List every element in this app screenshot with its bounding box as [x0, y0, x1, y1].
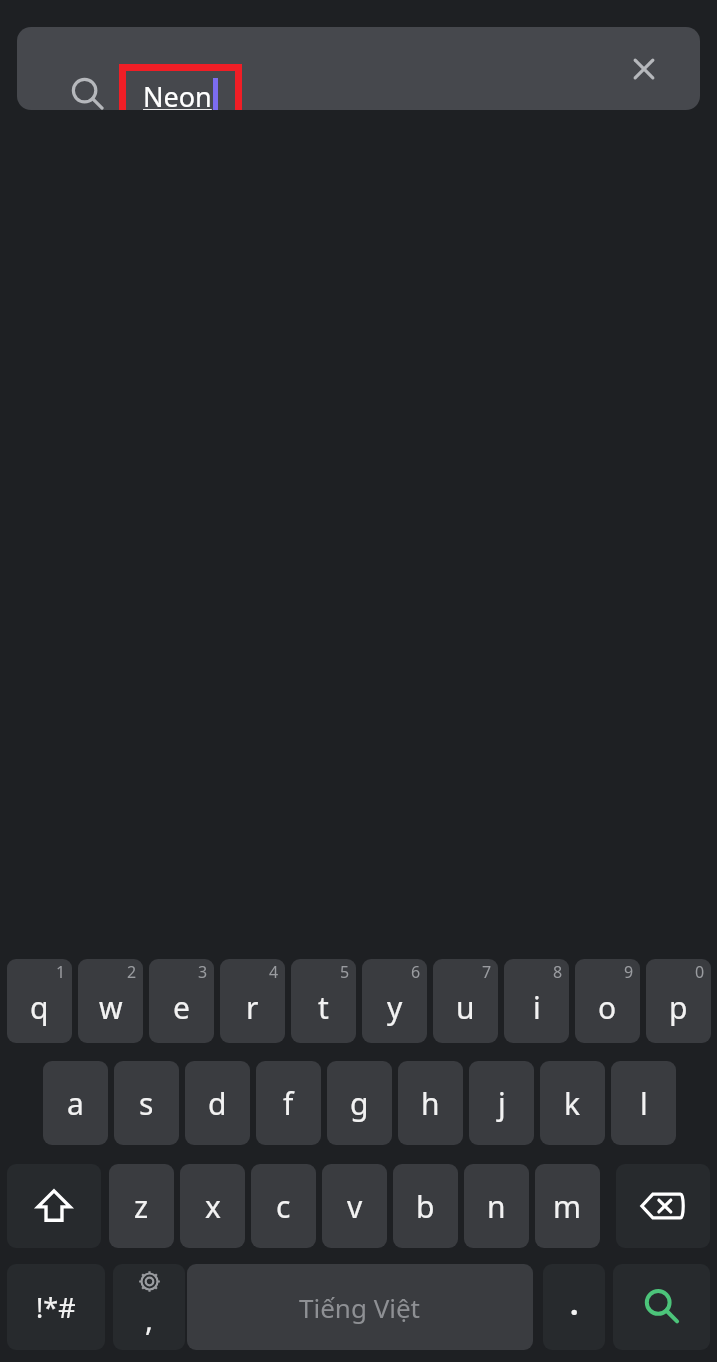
staticText: 1: [56, 961, 66, 983]
staticText: d: [208, 1083, 227, 1124]
staticText: 8: [553, 961, 563, 983]
staticText: 6: [411, 961, 421, 983]
staticText: e: [173, 987, 190, 1028]
button[interactable]: a: [43, 1061, 108, 1145]
button[interactable]: 0: [646, 959, 711, 1043]
staticText: p: [669, 987, 688, 1028]
button[interactable]: Comma, settings: [113, 1264, 185, 1350]
button[interactable]: Shift: [7, 1164, 101, 1248]
button[interactable]: Neon: [17, 27, 700, 110]
button[interactable]: j: [469, 1061, 534, 1145]
staticText: r: [246, 987, 259, 1028]
staticText: y: [387, 987, 403, 1028]
button[interactable]: 8: [504, 959, 569, 1043]
staticText: b: [416, 1186, 435, 1227]
button[interactable]: 2: [78, 959, 143, 1043]
staticText: o: [598, 987, 617, 1028]
staticText: x: [205, 1186, 221, 1227]
button[interactable]: b: [393, 1164, 458, 1248]
button[interactable]: 9: [575, 959, 640, 1043]
staticText: v: [347, 1186, 363, 1227]
button[interactable]: n: [464, 1164, 529, 1248]
staticText: l: [640, 1083, 648, 1124]
staticText: t: [318, 987, 329, 1028]
button[interactable]: Clear search: [618, 43, 670, 95]
button[interactable]: x: [180, 1164, 245, 1248]
button[interactable]: g: [327, 1061, 392, 1145]
button[interactable]: 3: [149, 959, 214, 1043]
button[interactable]: 1: [7, 959, 72, 1043]
staticText: c: [276, 1186, 291, 1227]
staticText: 2: [127, 961, 137, 983]
button[interactable]: l: [611, 1061, 676, 1145]
button[interactable]: s: [114, 1061, 179, 1145]
staticText: 0: [695, 961, 705, 983]
button[interactable]: Search: [613, 1264, 710, 1350]
staticText: Neon: [143, 78, 212, 110]
staticText: m: [553, 1186, 582, 1227]
staticText: q: [30, 987, 49, 1028]
staticText: n: [487, 1186, 506, 1227]
staticText: 3: [198, 961, 208, 983]
staticText: f: [283, 1083, 294, 1124]
staticText: Tiếng Việt: [299, 1290, 421, 1325]
staticText: k: [564, 1083, 581, 1124]
staticText: h: [421, 1083, 440, 1124]
button[interactable]: Backspace: [616, 1164, 710, 1248]
button[interactable]: m: [535, 1164, 600, 1248]
staticText: u: [456, 987, 475, 1028]
staticText: 5: [340, 961, 350, 983]
staticText: i: [533, 987, 541, 1028]
staticText: g: [350, 1083, 369, 1124]
staticText: z: [134, 1186, 149, 1227]
button[interactable]: c: [251, 1164, 316, 1248]
button[interactable]: !*#: [7, 1264, 105, 1350]
staticText: 9: [624, 961, 634, 983]
button[interactable]: 7: [433, 959, 498, 1043]
staticText: w: [99, 987, 123, 1028]
button[interactable]: k: [540, 1061, 605, 1145]
staticText: ,: [145, 1299, 154, 1340]
staticText: a: [67, 1083, 84, 1124]
button[interactable]: z: [109, 1164, 174, 1248]
staticText: 7: [482, 961, 492, 983]
button[interactable]: 6: [362, 959, 427, 1043]
button[interactable]: h: [398, 1061, 463, 1145]
button[interactable]: v: [322, 1164, 387, 1248]
button[interactable]: Tiếng Việt: [187, 1264, 533, 1350]
staticText: !*#: [36, 1289, 76, 1326]
staticText: .: [570, 1283, 579, 1324]
button[interactable]: d: [185, 1061, 250, 1145]
button[interactable]: 4: [220, 959, 285, 1043]
staticText: 4: [269, 961, 279, 983]
button[interactable]: .: [543, 1264, 605, 1350]
button[interactable]: f: [256, 1061, 321, 1145]
button[interactable]: 5: [291, 959, 356, 1043]
staticText: s: [139, 1083, 154, 1124]
staticText: j: [498, 1083, 506, 1124]
